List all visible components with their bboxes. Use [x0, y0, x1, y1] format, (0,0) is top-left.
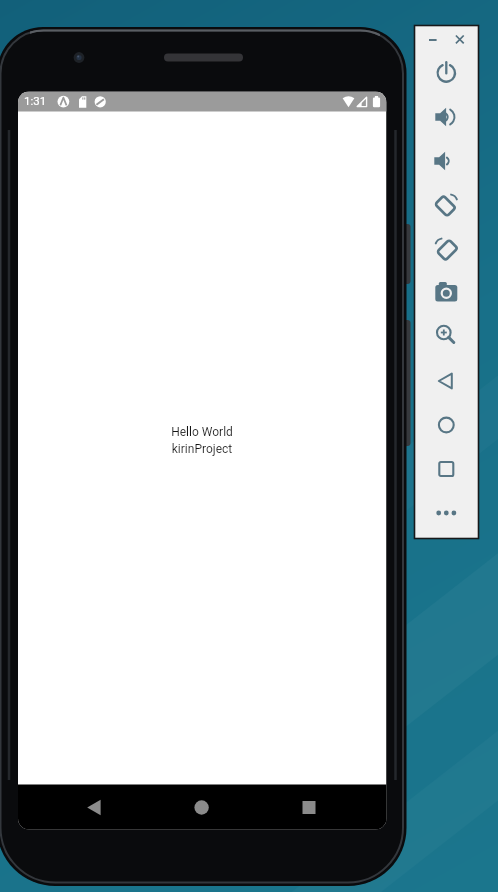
button[interactable] — [430, 189, 462, 221]
button[interactable] — [430, 409, 462, 441]
button[interactable] — [181, 788, 221, 827]
button[interactable] — [430, 145, 462, 177]
button[interactable] — [430, 365, 462, 397]
button[interactable] — [430, 453, 462, 485]
button[interactable] — [430, 276, 462, 308]
staticText: Hello World kirinProject — [18, 425, 386, 465]
button[interactable] — [430, 57, 462, 89]
button[interactable] — [430, 233, 462, 265]
button[interactable] — [424, 32, 441, 49]
button[interactable] — [74, 788, 114, 827]
button[interactable] — [452, 32, 469, 49]
button[interactable] — [430, 319, 462, 351]
button[interactable] — [289, 788, 329, 827]
button[interactable] — [430, 101, 462, 133]
button[interactable] — [430, 497, 462, 529]
staticText: 1:31 — [24, 94, 47, 107]
